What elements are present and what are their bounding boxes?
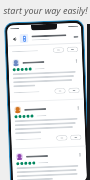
staticText: start your way easily! (3, 4, 88, 16)
button[interactable] (67, 47, 78, 52)
button[interactable] (53, 47, 64, 53)
other: More options (76, 106, 80, 110)
button[interactable] (70, 135, 81, 140)
other: More options (74, 59, 78, 63)
button[interactable] (68, 88, 80, 93)
button[interactable]: Back (10, 35, 18, 42)
button[interactable] (54, 88, 66, 94)
other: More options (78, 153, 82, 157)
button[interactable] (56, 135, 67, 141)
